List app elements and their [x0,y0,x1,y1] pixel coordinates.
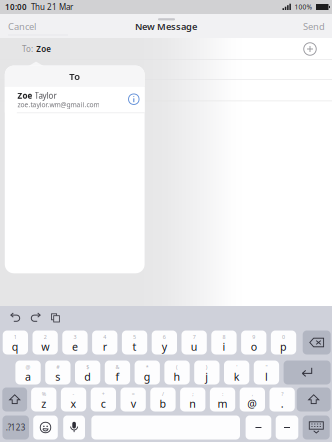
staticText: Thu 21 Mar [31,2,73,12]
button[interactable]: $ [75,360,100,384]
button[interactable]: Cancel [8,21,48,32]
staticText: k [234,369,240,384]
staticText: Cancel [8,20,36,33]
button[interactable]: Redo [31,314,41,322]
staticText: # [56,363,59,370]
staticText: 3 [73,333,76,340]
staticText: p [280,339,287,354]
staticText: c [101,396,106,411]
staticText: @ [26,363,31,370]
button[interactable]: Zoe [5,86,145,113]
staticText: w [41,339,49,354]
staticText: : [222,390,223,397]
staticText: s [55,369,60,384]
button[interactable]: Shift [2,387,27,411]
staticText: ? [281,390,283,397]
button[interactable]: Delete [303,330,331,354]
staticText: t [133,339,137,354]
staticText: z [41,396,46,411]
button[interactable]: 5 [122,330,147,354]
button[interactable]: Paste [51,313,60,323]
button[interactable]: Right [276,415,298,439]
button[interactable]: Left [246,415,271,439]
staticText: 5 [133,333,136,340]
staticText: & [115,363,119,370]
staticText: To [69,70,80,82]
staticText: 2 [44,333,47,340]
button[interactable]: 2 [32,330,58,354]
button[interactable]: ? [269,387,295,411]
staticText: * [146,363,149,370]
staticText: 1 [14,333,17,340]
staticText: g [144,369,151,384]
button[interactable]: Return [284,360,331,384]
button[interactable]: ( [164,360,190,384]
staticText: Zoe [36,44,51,54]
button[interactable]: Space [91,415,240,439]
button[interactable]: Numbers [2,415,29,439]
staticText: % [42,390,46,397]
staticText: 7 [193,333,196,340]
staticText: Send [303,20,325,33]
button[interactable]: # [45,360,70,384]
button[interactable]: / [150,387,176,411]
staticText: x [71,396,77,411]
staticText: . [281,396,284,411]
button[interactable]: & [105,360,130,384]
staticText: ' [236,363,237,370]
button[interactable]: 9 [241,330,266,354]
button[interactable]: * [135,360,160,384]
button[interactable]: , [240,387,265,411]
button[interactable]: Hide keyboard [303,415,330,439]
staticText: " [265,363,267,370]
staticText: 8 [222,333,225,340]
button[interactable]: 8 [211,330,237,354]
staticText: 0 [282,333,285,340]
staticText: l [265,369,268,384]
staticText: 6 [163,333,166,340]
button[interactable]: % [31,387,56,411]
button[interactable]: @ [15,360,41,384]
button[interactable]: ) [194,360,219,384]
button[interactable]: Dictate [63,415,85,439]
staticText: h [174,369,181,384]
staticText: New Message [135,20,197,33]
staticText: b [159,396,166,411]
button[interactable]: Emoji [33,415,58,439]
staticText: .?123 [6,422,26,433]
button[interactable]: 6 [152,330,177,354]
staticText: 4 [103,333,106,340]
button[interactable]: ' [224,360,249,384]
button[interactable]: 0 [271,330,296,354]
staticText: j [205,369,208,384]
button[interactable]: - [61,387,86,411]
button[interactable]: Add recipient [304,43,316,55]
staticText: Zoe [17,90,32,101]
button[interactable]: : [210,387,235,411]
button[interactable]: ; [180,387,205,411]
staticText: 10:00 [5,2,27,12]
staticText: $ [86,363,89,370]
button[interactable]: + [91,387,116,411]
button[interactable]: 1 [3,330,28,354]
staticText: @ [247,396,257,411]
staticText: ( [176,363,178,370]
staticText: ) [206,363,208,370]
staticText: 9 [252,333,255,340]
staticText: o [251,339,257,354]
button[interactable]: 4 [92,330,117,354]
staticText: r [103,339,107,354]
button[interactable]: Undo [10,314,20,322]
button[interactable]: 3 [62,330,88,354]
staticText: To: [22,44,33,54]
staticText: u [191,339,198,354]
staticText: d [84,369,91,384]
button[interactable]: Shift [297,387,331,411]
staticText: a [25,369,31,384]
button[interactable]: " [254,360,279,384]
button[interactable]: 7 [181,330,207,354]
button[interactable]: = [120,387,146,411]
button[interactable]: Send [297,21,325,32]
staticText: - [73,390,75,397]
staticText: 100% [294,3,312,11]
